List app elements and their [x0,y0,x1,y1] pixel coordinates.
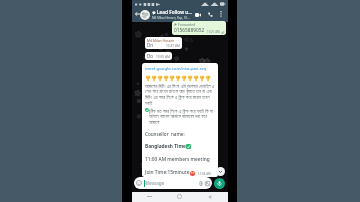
button[interactable]: Recent apps [145,192,154,201]
staticText: meet.google.com/nsa-pari-srq [145,65,207,71]
staticText: Md Milan Hossen [147,38,175,42]
button[interactable]: Group photo [140,10,150,20]
staticText: 10:37 AM [166,44,180,48]
staticText: 10:21 AM [207,30,220,34]
staticText: (ঠিক মত সময় লিংক এ ক্লিক করে সবাই কি না… [149,108,216,125]
button[interactable]: meet.google.com/nsa-pari-srq [142,63,218,177]
staticText: Md Milan Hossen, Rup, S1... [152,16,190,20]
button[interactable]: Message [134,177,212,189]
button[interactable]: Home [175,192,184,201]
button[interactable]: Back [205,192,214,201]
button[interactable]: Forwarded [172,21,226,35]
staticText: Do [147,53,154,59]
staticText: Counsellor name: [145,131,185,137]
staticText: Join Time:15minute [145,169,190,176]
staticText: Message [145,180,165,186]
staticText: Lead Follow u... [157,9,193,16]
staticText: Bangladesh Time [145,143,186,150]
button[interactable]: Scroll to bottom [216,167,225,176]
staticText: Dn [147,42,154,48]
staticText: আজকের মিটিং এর লিংক এটা আপনার মোবাইল এ স… [145,83,216,106]
staticText: Forwarded [178,22,196,27]
staticText: 11:04 AM [198,172,211,176]
button[interactable]: Voice message [214,178,225,189]
button[interactable]: Video call [193,11,203,19]
button[interactable]: More options [217,10,225,18]
staticText: 11:00 AM members meeting [145,156,210,163]
button[interactable]: Lead Follow u... [152,9,197,20]
button[interactable]: Md Milan Hossen [145,37,182,49]
staticText: 01565889052 [174,27,205,34]
staticText: 10:55 AM [156,55,170,59]
button[interactable]: Do [145,52,172,60]
button[interactable]: Back [134,10,141,17]
button[interactable]: Call [206,10,215,19]
